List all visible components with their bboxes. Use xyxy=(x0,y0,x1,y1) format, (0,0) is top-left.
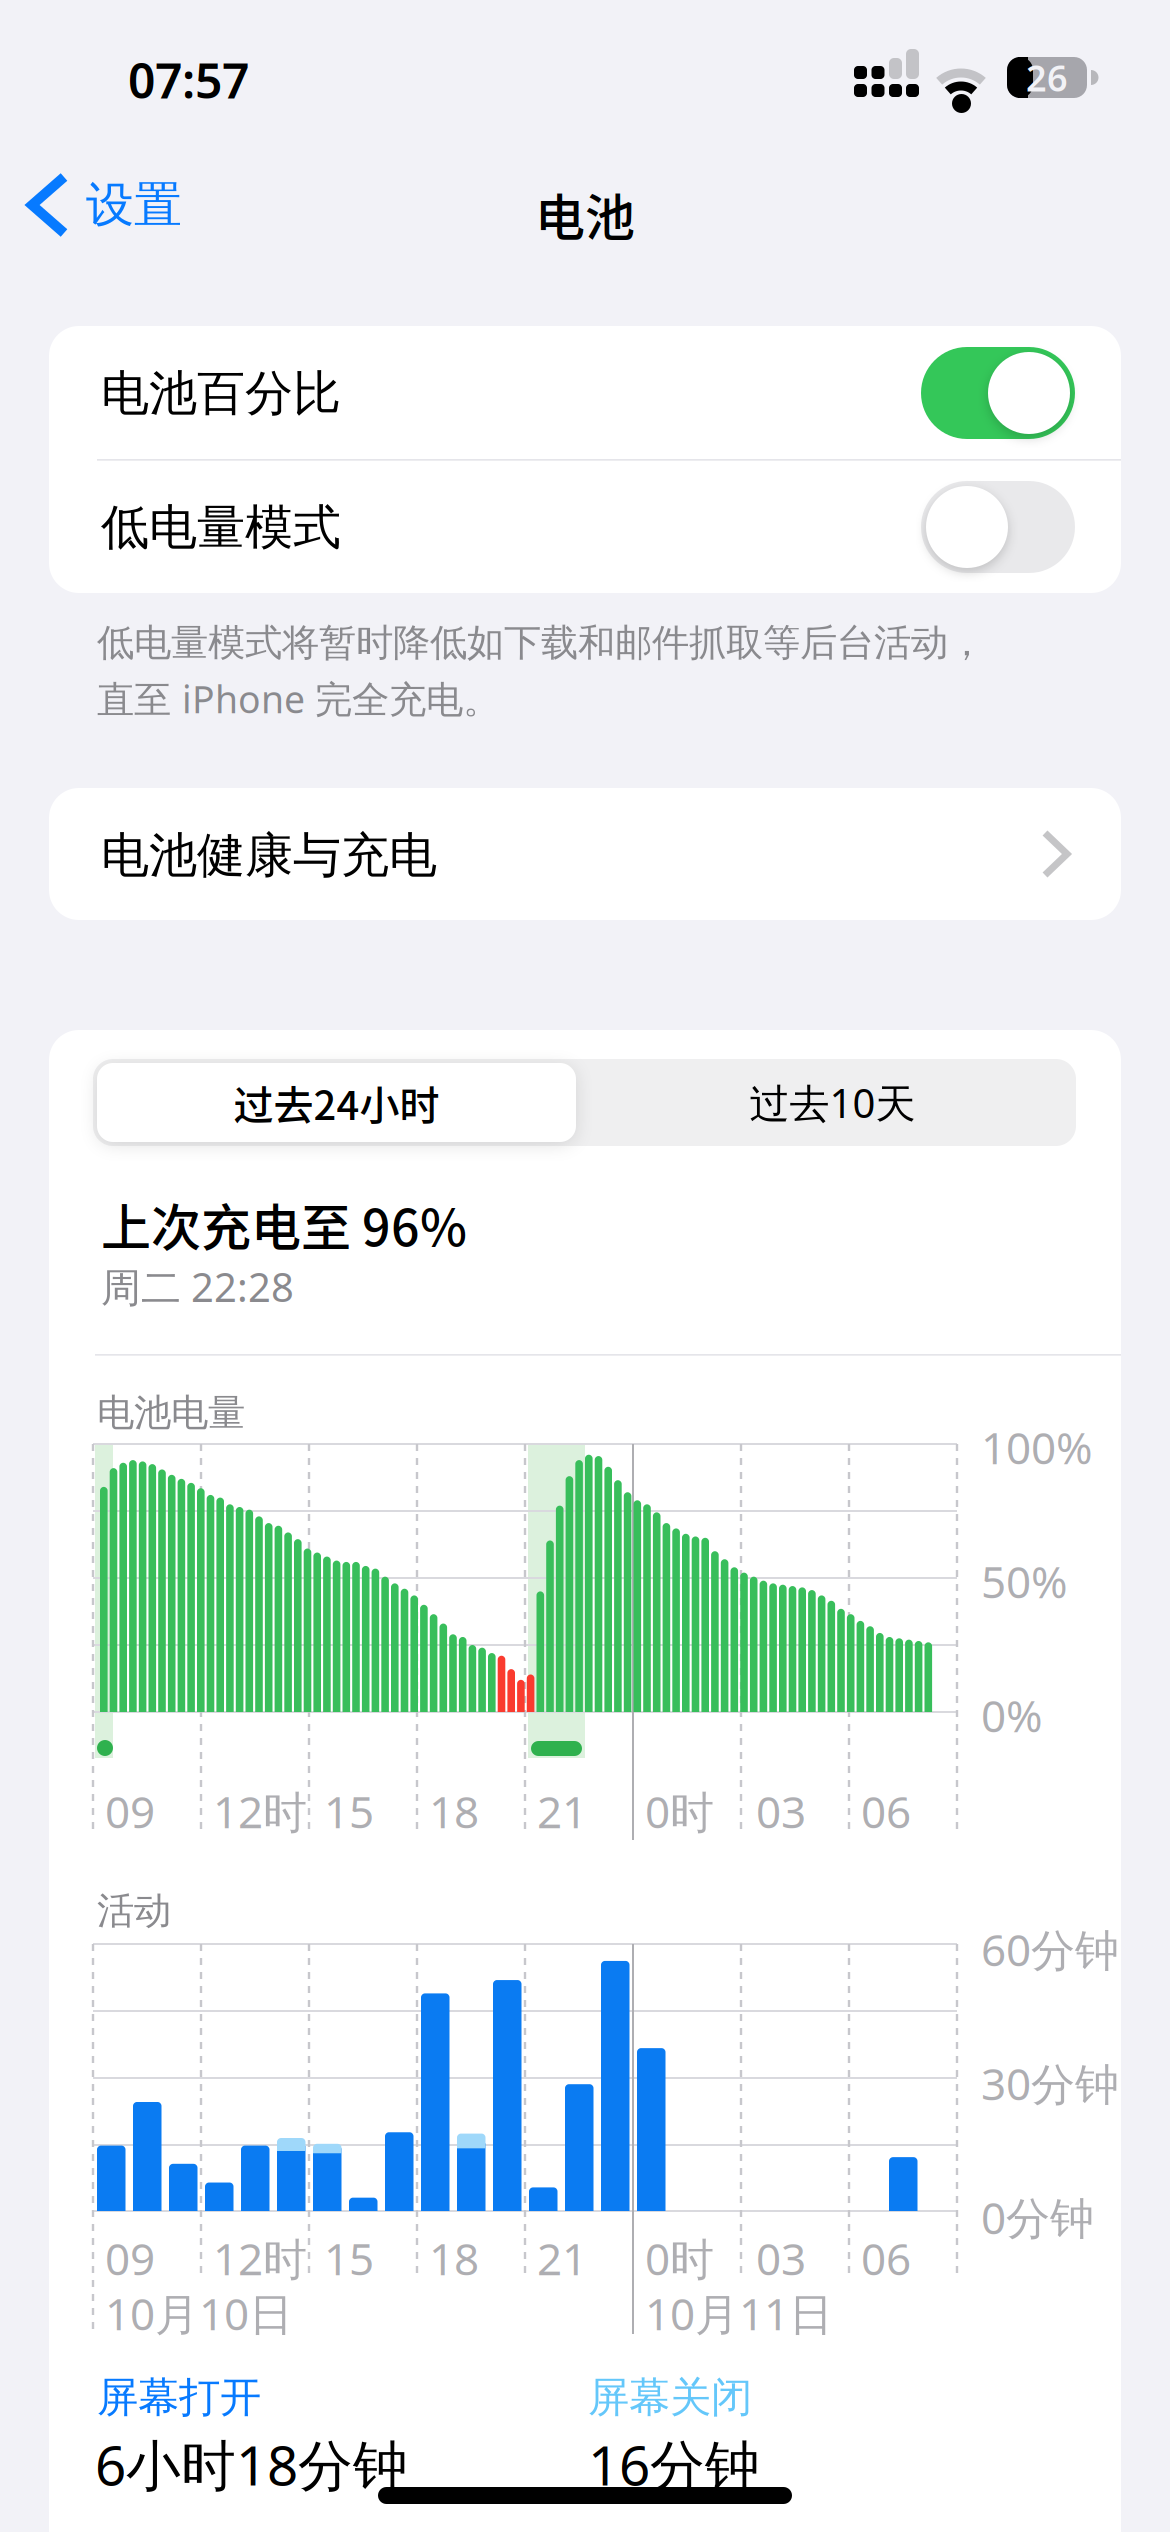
staticText: 03 xyxy=(756,1782,806,1840)
staticText: 0分钟 xyxy=(981,2188,1094,2246)
staticText: 电池百分比 xyxy=(101,364,341,423)
staticText: 上次充电至 96% xyxy=(101,1188,467,1260)
staticText: 15 xyxy=(324,2229,374,2287)
button[interactable]: 电池健康与充电 xyxy=(49,788,1121,920)
staticText: 低电量模式 xyxy=(101,498,341,557)
staticText: 设置 xyxy=(86,175,182,234)
staticText: 09 xyxy=(105,2229,155,2287)
staticText: 03 xyxy=(756,2229,806,2287)
staticText: 电池 xyxy=(535,178,635,250)
staticText: 屏幕打开 xyxy=(97,2372,261,2423)
staticText: 过去10天 xyxy=(749,1076,915,1129)
staticText: 0时 xyxy=(645,2229,714,2287)
staticText: 07:57 xyxy=(128,48,249,112)
staticText: 18 xyxy=(429,1782,479,1840)
button[interactable]: 设置 xyxy=(0,160,192,250)
button[interactable]: 过去24小时 xyxy=(97,1063,576,1142)
staticText: 直至 iPhone 完全充电。 xyxy=(97,674,500,723)
staticText: 06 xyxy=(861,1782,911,1840)
button[interactable]: 电池百分比 xyxy=(921,347,1075,439)
staticText: 15 xyxy=(324,1782,374,1840)
staticText: 09 xyxy=(105,1782,155,1840)
staticText: 21 xyxy=(537,2229,587,2287)
staticText: 12时 xyxy=(213,2229,307,2287)
staticText: 0% xyxy=(981,1686,1043,1744)
button[interactable]: 过去10天 xyxy=(593,1063,1072,1142)
staticText: 低电量模式将暂时降低如下载和邮件抓取等后台活动， xyxy=(97,620,985,666)
staticText: 周二 22:28 xyxy=(101,1260,294,1313)
staticText: 100% xyxy=(981,1418,1093,1476)
staticText: 过去24小时 xyxy=(233,1073,439,1131)
staticText: 6小时18分钟 xyxy=(95,2428,408,2501)
staticText: 电池健康与充电 xyxy=(101,826,437,885)
staticText: 26 xyxy=(1026,54,1068,101)
staticText: 50% xyxy=(981,1552,1068,1610)
staticText: 12时 xyxy=(213,1782,307,1840)
staticText: 06 xyxy=(861,2229,911,2287)
staticText: 18 xyxy=(429,2229,479,2287)
staticText: 21 xyxy=(537,1782,587,1840)
staticText: 60分钟 xyxy=(981,1920,1119,1978)
button[interactable]: 低电量模式 xyxy=(921,481,1075,573)
staticText: 10月10日 xyxy=(105,2284,293,2342)
staticText: 10月11日 xyxy=(645,2284,833,2342)
staticText: 电池电量 xyxy=(97,1390,245,1436)
staticText: 活动 xyxy=(97,1888,171,1934)
staticText: 16分钟 xyxy=(588,2428,760,2501)
staticText: 30分钟 xyxy=(981,2054,1119,2112)
staticText: 屏幕关闭 xyxy=(588,2372,752,2423)
staticText: 0时 xyxy=(645,1782,714,1840)
